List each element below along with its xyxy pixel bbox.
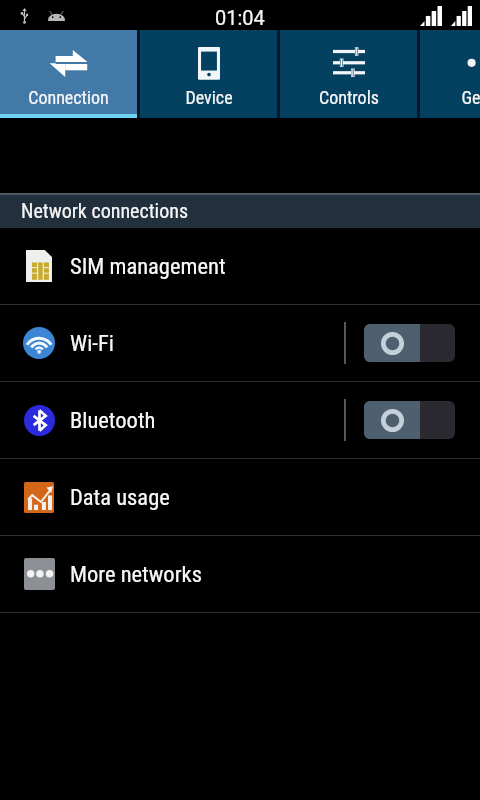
button[interactable]: Device bbox=[140, 30, 277, 118]
button[interactable]: SIM management bbox=[0, 228, 480, 304]
staticText: More networks bbox=[70, 561, 202, 587]
button[interactable]: Toggle off bbox=[364, 401, 455, 439]
button[interactable]: Connection bbox=[0, 30, 137, 118]
button[interactable]: More networks bbox=[0, 536, 480, 612]
button[interactable]: Data usage bbox=[0, 459, 480, 535]
staticText: Device bbox=[185, 87, 233, 108]
staticText: Controls bbox=[319, 87, 379, 108]
button[interactable]: General bbox=[420, 30, 480, 118]
staticText: Data usage bbox=[70, 484, 170, 510]
staticText: Wi-Fi bbox=[70, 330, 114, 356]
staticText: General bbox=[461, 87, 480, 108]
staticText: Network connections bbox=[21, 199, 189, 222]
button[interactable]: Bluetooth bbox=[0, 382, 480, 458]
staticText: Connection bbox=[28, 87, 109, 108]
staticText: Bluetooth bbox=[70, 407, 156, 433]
button[interactable]: Toggle off bbox=[364, 324, 455, 362]
staticText: SIM management bbox=[70, 253, 226, 279]
staticText: 01:04 bbox=[215, 6, 265, 29]
button[interactable]: Wi-Fi bbox=[0, 305, 480, 381]
button[interactable]: Controls bbox=[280, 30, 417, 118]
